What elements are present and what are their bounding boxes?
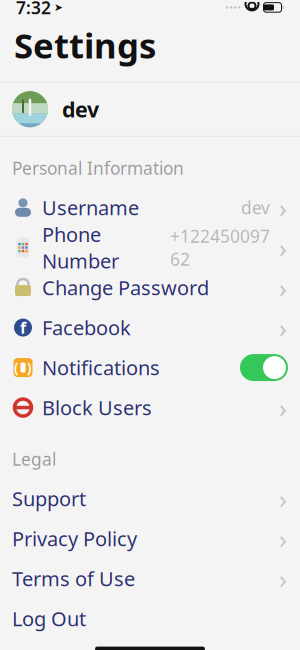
button[interactable]: Privacy Policy xyxy=(0,519,300,559)
button[interactable]: Notifications toggle xyxy=(240,354,288,381)
staticText: Notifications xyxy=(42,354,160,381)
staticText: dev xyxy=(62,95,99,123)
staticText: › xyxy=(279,482,287,515)
staticText: Phone Number xyxy=(42,221,119,274)
staticText: › xyxy=(279,311,287,344)
button[interactable]: Support xyxy=(0,479,300,519)
staticText: ) xyxy=(27,359,32,376)
staticText: Change Password xyxy=(42,274,209,301)
button[interactable]: Block Users xyxy=(0,388,300,428)
staticText: Personal Information xyxy=(12,157,184,180)
button[interactable]: Change Password xyxy=(0,268,300,308)
staticText: dev xyxy=(241,196,270,219)
staticText: +12245009762 xyxy=(170,225,270,271)
staticText: Facebook xyxy=(42,314,131,341)
staticText: › xyxy=(279,271,287,304)
staticText: Privacy Policy xyxy=(12,525,137,552)
button[interactable]: Log Out xyxy=(0,599,300,639)
staticText: › xyxy=(279,231,287,264)
staticText: Terms of Use xyxy=(12,565,135,592)
button[interactable]: Username xyxy=(0,188,300,228)
staticText: Legal xyxy=(12,448,56,471)
staticText: f xyxy=(20,317,26,338)
staticText: Settings xyxy=(14,22,156,68)
staticText: Log Out xyxy=(12,605,86,632)
button[interactable]: Phone Number xyxy=(0,228,300,268)
staticText: ➤ xyxy=(54,1,63,13)
staticText: › xyxy=(279,391,287,424)
staticText: › xyxy=(279,191,287,224)
staticText: Username xyxy=(42,194,139,221)
staticText: 7:32 xyxy=(16,0,51,19)
staticText: › xyxy=(279,522,287,555)
staticText: › xyxy=(279,562,287,595)
staticText: Support xyxy=(12,485,86,512)
button[interactable]: Terms of Use xyxy=(0,559,300,599)
staticText: ( xyxy=(14,359,19,376)
button[interactable]: dev xyxy=(0,83,300,136)
staticText: Block Users xyxy=(42,394,152,421)
button[interactable]: f xyxy=(0,308,300,348)
